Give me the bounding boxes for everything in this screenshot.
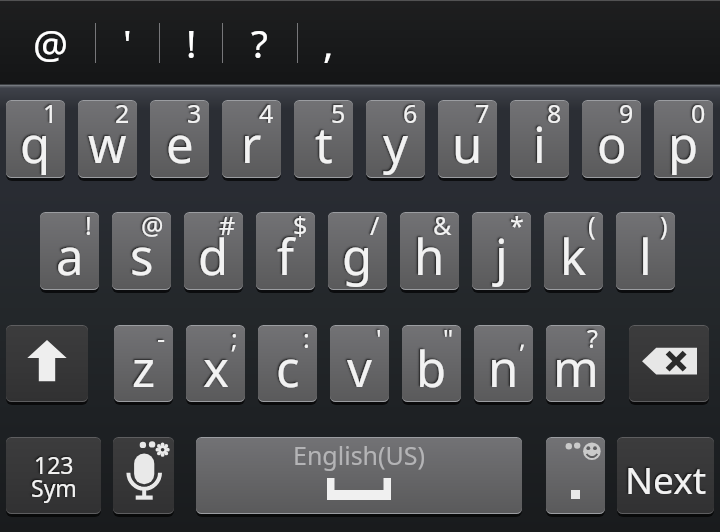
button[interactable]	[546, 438, 605, 513]
button[interactable]: '	[95, 0, 159, 85]
button[interactable]: j	[472, 213, 531, 289]
staticText: m	[553, 335, 599, 401]
staticText: 1	[43, 101, 58, 130]
staticText: *	[510, 213, 524, 242]
staticText: Next	[625, 454, 707, 504]
staticText: English(US)	[293, 438, 426, 472]
staticText: v	[347, 335, 372, 401]
button[interactable]: y	[366, 101, 425, 177]
button[interactable]: ?	[222, 0, 297, 85]
staticText: )	[660, 213, 668, 242]
staticText: &	[433, 213, 452, 242]
button[interactable]: g	[328, 213, 387, 289]
staticText: t	[315, 111, 333, 177]
button[interactable]: b	[402, 326, 461, 401]
staticText: 8	[547, 101, 562, 130]
button[interactable]: x	[186, 326, 245, 401]
button[interactable]: d	[184, 213, 243, 289]
button[interactable]: p	[654, 101, 713, 177]
staticText: e	[166, 111, 194, 177]
staticText: 6	[403, 101, 418, 130]
staticText: !	[85, 213, 92, 242]
button[interactable]: @	[6, 0, 95, 85]
staticText: ?	[587, 326, 598, 355]
button[interactable]: o	[582, 101, 641, 177]
staticText: '	[376, 326, 382, 355]
staticText: d	[198, 223, 229, 289]
staticText: 7	[475, 101, 490, 130]
button[interactable]: e	[150, 101, 209, 177]
staticText: b	[416, 335, 447, 401]
button[interactable]: r	[222, 101, 281, 177]
staticText: 0	[691, 101, 706, 130]
staticText: 5	[331, 101, 346, 130]
staticText: ,	[519, 326, 526, 355]
button[interactable]: q	[6, 101, 65, 177]
button[interactable]: ,	[297, 0, 360, 85]
button[interactable]: v	[330, 326, 389, 401]
staticText: z	[132, 335, 156, 401]
staticText: @	[33, 16, 69, 69]
staticText: '	[123, 16, 132, 69]
button[interactable]: Voice input	[113, 438, 174, 513]
staticText: w	[88, 111, 127, 177]
staticText: (	[588, 213, 596, 242]
staticText: Sym	[31, 472, 77, 503]
staticText: ?	[251, 16, 268, 69]
button[interactable]: 123	[6, 438, 101, 513]
staticText: 4	[259, 101, 274, 130]
button[interactable]: Space	[196, 438, 522, 513]
button[interactable]: a	[40, 213, 99, 289]
staticText: @	[141, 213, 164, 242]
button[interactable]: n	[474, 326, 533, 401]
staticText: 9	[619, 101, 634, 130]
button[interactable]: Delete	[629, 326, 709, 401]
staticText: a	[56, 223, 84, 289]
staticText: o	[597, 111, 627, 177]
staticText: u	[452, 111, 483, 177]
button[interactable]: h	[400, 213, 459, 289]
button[interactable]: k	[544, 213, 603, 289]
button[interactable]: Shift	[6, 326, 88, 401]
staticText: y	[383, 111, 408, 177]
staticText: g	[342, 223, 373, 289]
staticText: i	[533, 111, 546, 177]
staticText: ,	[323, 16, 334, 69]
staticText: k	[560, 223, 587, 289]
button[interactable]: Next	[617, 438, 714, 513]
staticText: f	[277, 223, 294, 289]
staticText: #	[219, 213, 236, 242]
staticText: ;	[231, 326, 238, 355]
button[interactable]: t	[294, 101, 353, 177]
staticText: s	[130, 223, 154, 289]
staticText: c	[276, 335, 300, 401]
staticText: r	[241, 111, 262, 177]
staticText: 3	[187, 101, 202, 130]
button[interactable]: f	[256, 213, 315, 289]
staticText: :	[303, 326, 310, 355]
button[interactable]: w	[78, 101, 137, 177]
staticText: j	[495, 223, 508, 289]
staticText: "	[443, 326, 454, 355]
button[interactable]: l	[616, 213, 675, 289]
button[interactable]: s	[112, 213, 171, 289]
staticText: $	[293, 213, 308, 242]
staticText: n	[488, 335, 519, 401]
button[interactable]: m	[546, 326, 605, 401]
staticText: -	[157, 326, 166, 355]
button[interactable]: c	[258, 326, 317, 401]
button[interactable]: !	[159, 0, 223, 85]
staticText: h	[414, 223, 445, 289]
button[interactable]: z	[114, 326, 173, 401]
staticText: 123	[34, 449, 74, 480]
staticText: !	[186, 16, 197, 69]
button[interactable]: u	[438, 101, 497, 177]
staticText: x	[203, 335, 229, 401]
staticText: q	[20, 111, 51, 177]
staticText: p	[668, 111, 699, 177]
staticText: 2	[115, 101, 130, 130]
button[interactable]: i	[510, 101, 569, 177]
staticText: /	[370, 213, 380, 242]
staticText: l	[639, 223, 652, 289]
